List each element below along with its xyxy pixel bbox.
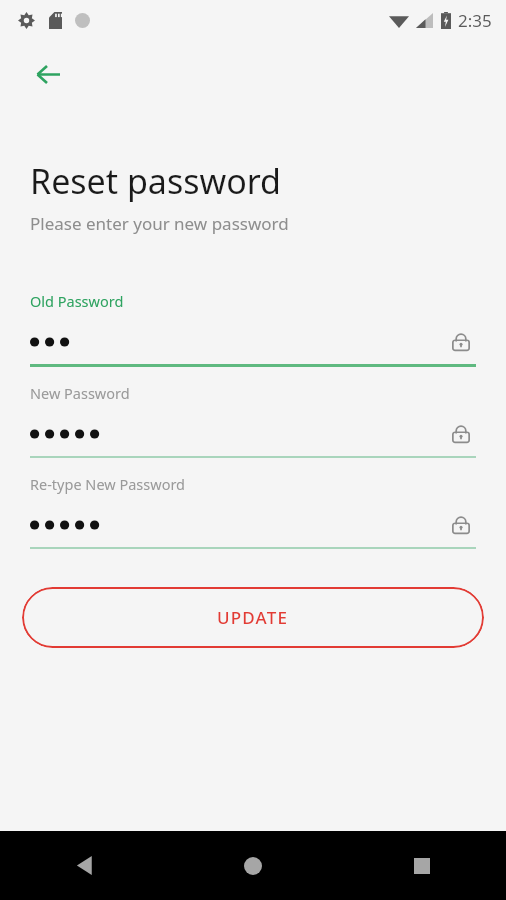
button[interactable]: Back — [22, 48, 74, 100]
staticText: Re-type New Password — [30, 474, 186, 494]
staticText: UPDATE — [217, 606, 289, 629]
staticText: New Password — [30, 383, 130, 403]
button[interactable]: Re-type New Password — [30, 474, 476, 549]
button[interactable]: Toggle password visibility — [446, 510, 476, 540]
button[interactable]: Recent apps — [337, 831, 506, 900]
button[interactable]: Back — [0, 831, 168, 900]
button[interactable]: Home — [168, 831, 337, 900]
button[interactable]: Toggle password visibility — [446, 419, 476, 449]
button[interactable]: UPDATE — [22, 587, 484, 648]
staticText: Old Password — [30, 291, 124, 311]
staticText: 2:35 — [458, 9, 492, 32]
button[interactable]: Toggle password visibility — [446, 327, 476, 357]
staticText: Reset password — [30, 158, 282, 204]
button[interactable]: Old Password — [30, 291, 476, 367]
staticText: Please enter your new password — [30, 212, 289, 235]
button[interactable]: New Password — [30, 383, 476, 458]
